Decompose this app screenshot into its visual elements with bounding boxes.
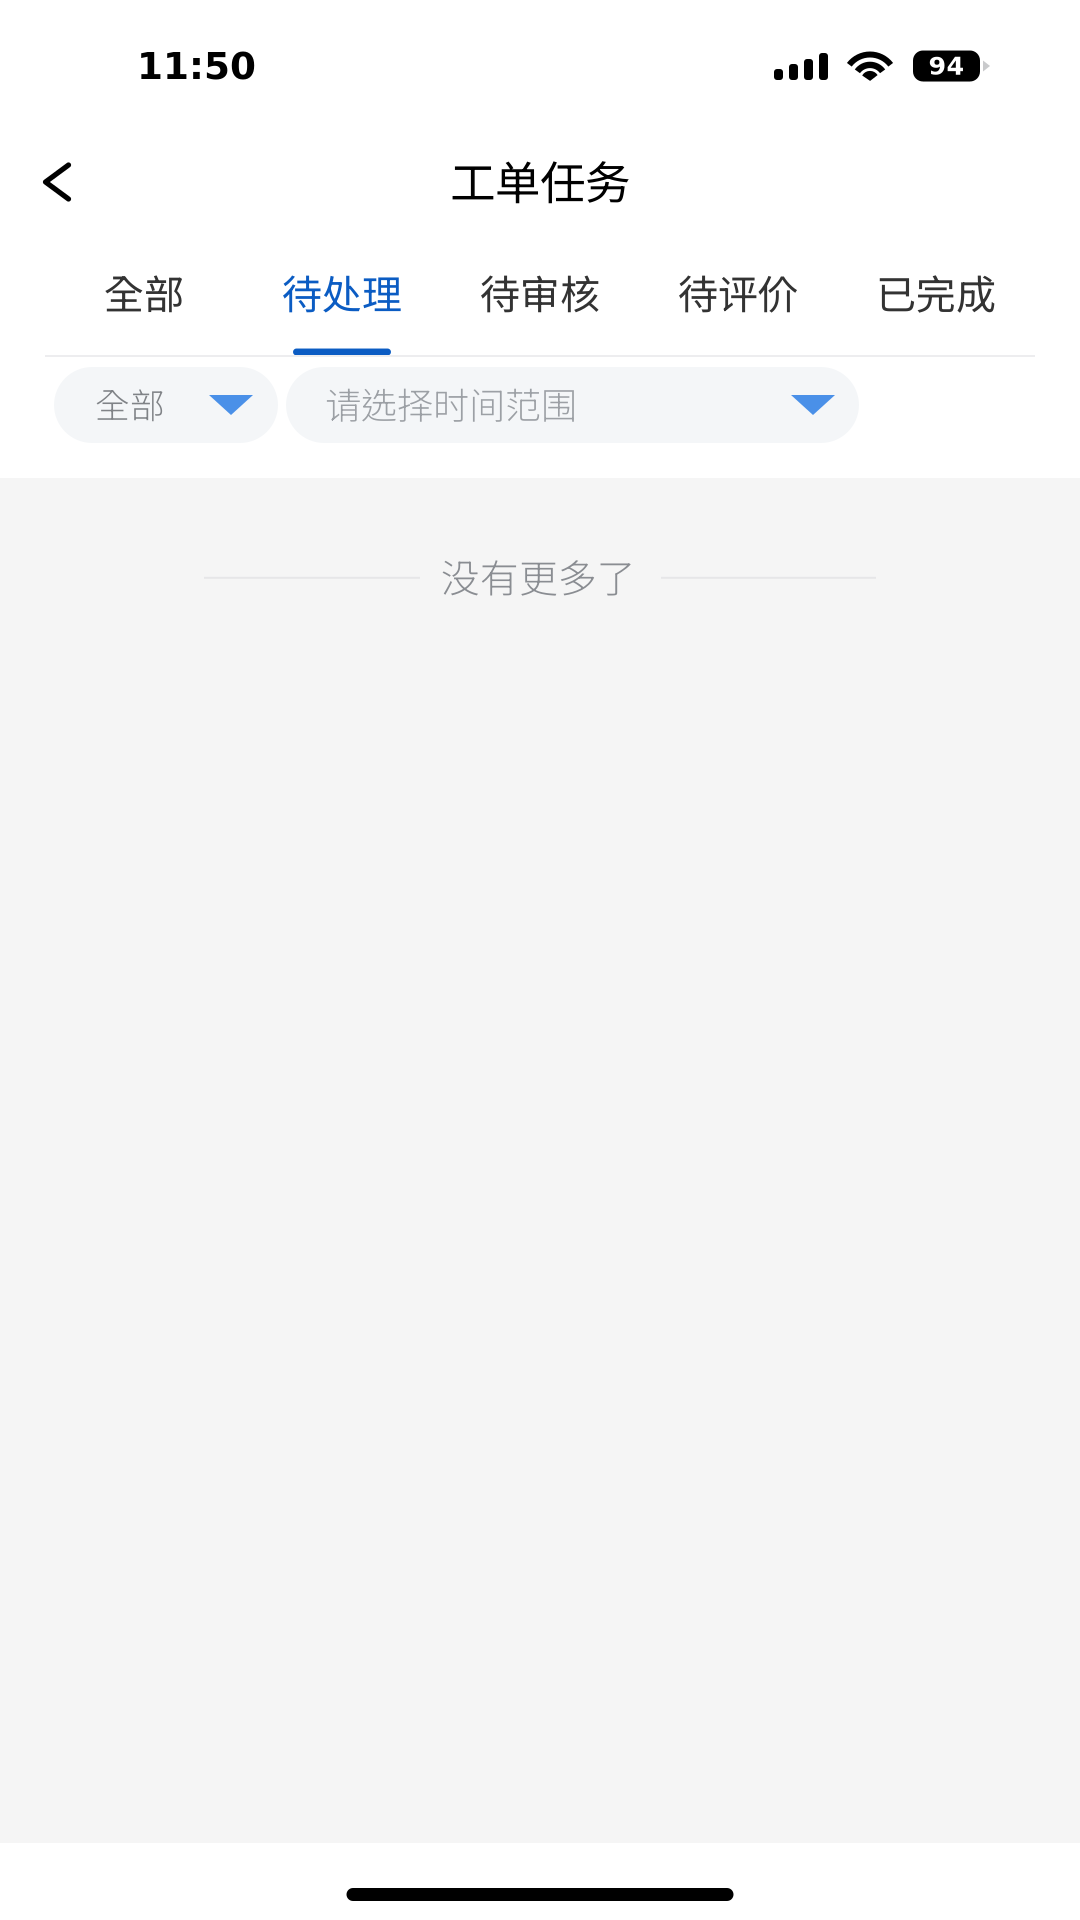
staticText: 待处理: [282, 270, 402, 318]
staticText: 待审核: [480, 270, 600, 318]
staticText: 已完成: [876, 270, 996, 318]
button[interactable]: 全部: [54, 367, 278, 443]
button[interactable]: 待评价: [639, 231, 837, 355]
button[interactable]: 已完成: [837, 231, 1035, 355]
staticText: 94: [928, 51, 964, 81]
button[interactable]: 待处理: [243, 231, 441, 355]
staticText: 工单任务: [450, 155, 630, 209]
button[interactable]: 全部: [45, 231, 243, 355]
button[interactable]: Back: [7, 132, 107, 232]
staticText: 待评价: [678, 270, 798, 318]
staticText: 全部: [95, 384, 165, 425]
staticText: 没有更多了: [441, 555, 636, 601]
staticText: 11:50: [137, 44, 256, 88]
button[interactable]: 请选择时间范围: [286, 367, 859, 443]
button[interactable]: 待审核: [441, 231, 639, 355]
staticText: 请选择时间范围: [325, 384, 577, 426]
staticText: 全部: [104, 270, 184, 318]
